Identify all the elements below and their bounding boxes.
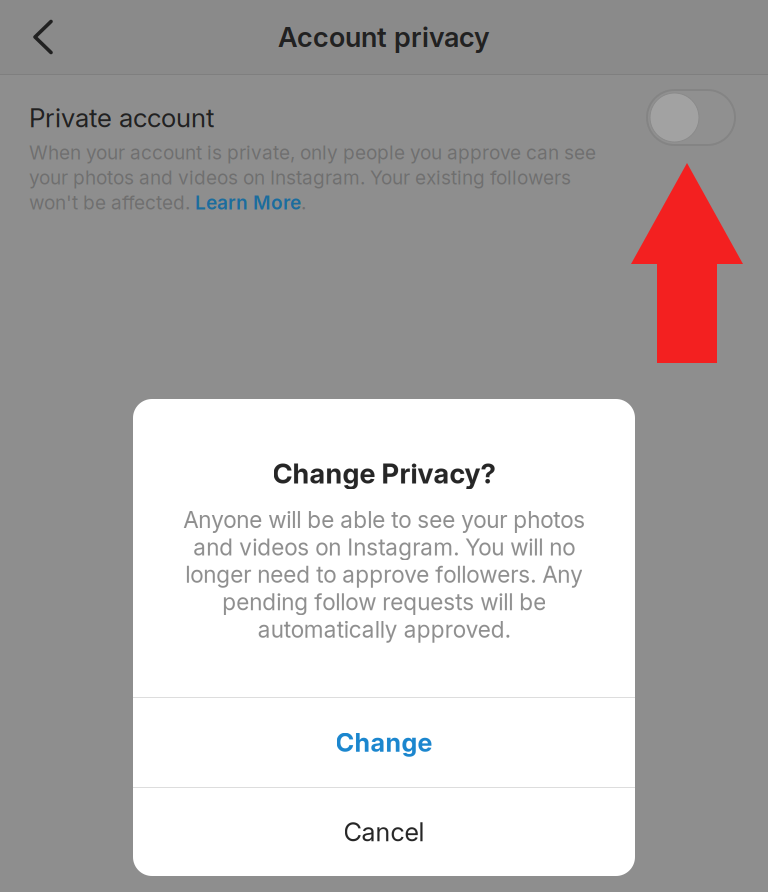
staticText: .	[301, 191, 306, 214]
button[interactable]: Back	[10, 0, 76, 74]
staticText: Learn More	[195, 191, 301, 214]
staticText: When your account is private, only peopl…	[29, 141, 596, 164]
staticText: Cancel	[343, 817, 424, 847]
staticText: Change Privacy?	[272, 457, 495, 490]
button[interactable]: Cancel	[133, 788, 635, 876]
staticText: Anyone will be able to see your photos a…	[183, 506, 585, 643]
staticText: Private account	[29, 102, 214, 133]
staticText: won't be affected.	[29, 191, 195, 214]
button[interactable]: Learn More	[195, 191, 301, 214]
staticText: Change	[335, 727, 432, 758]
staticText: your photos and videos on Instagram. You…	[29, 166, 571, 189]
button[interactable]: Private account	[647, 90, 735, 145]
button[interactable]: Change	[133, 698, 635, 787]
staticText: Account privacy	[278, 20, 490, 54]
